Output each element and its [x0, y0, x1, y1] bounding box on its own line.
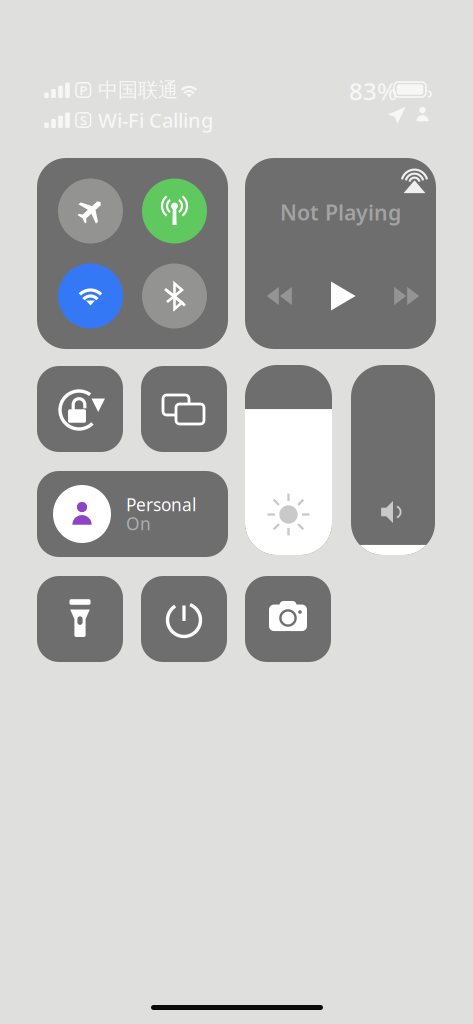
button[interactable]: Cellular Data [142, 178, 207, 243]
button[interactable]: Timer [141, 576, 227, 662]
button[interactable]: Wi-Fi [58, 263, 123, 328]
staticText: P [79, 81, 87, 99]
button[interactable]: Volume [351, 365, 435, 555]
button[interactable]: Focus: Personal [37, 471, 228, 557]
staticText: Personal [126, 493, 196, 516]
button[interactable]: Brightness [245, 365, 332, 555]
button[interactable]: Screen Mirroring [141, 366, 227, 452]
staticText: On [126, 512, 151, 535]
button[interactable]: Camera [245, 576, 331, 662]
staticText: 中国联通 [98, 78, 178, 102]
button[interactable]: Flashlight [37, 576, 123, 662]
staticText: S [80, 111, 87, 129]
button[interactable]: Airplane Mode [58, 178, 123, 243]
staticText: Wi-Fi Calling [98, 107, 213, 133]
button[interactable]: Next [382, 276, 432, 316]
button[interactable]: Play [318, 276, 368, 316]
staticText: 83% [349, 75, 397, 107]
button[interactable]: Rotation Lock [37, 366, 123, 452]
staticText: Not Playing [280, 198, 401, 226]
button[interactable]: Bluetooth [142, 263, 207, 328]
button[interactable]: Previous [255, 276, 305, 316]
